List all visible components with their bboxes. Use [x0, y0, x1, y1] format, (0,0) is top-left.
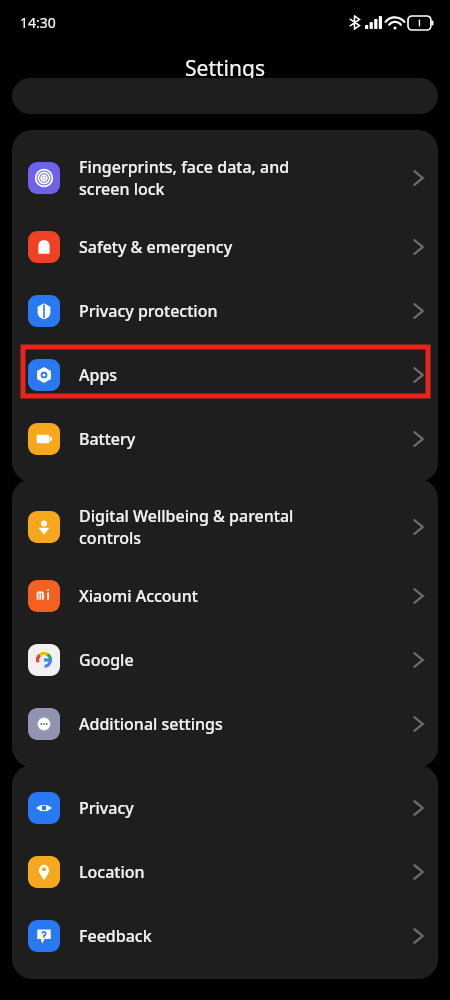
button[interactable]: Safety & emergency — [12, 215, 438, 279]
staticText: Google — [79, 649, 413, 671]
staticText: Digital Wellbeing & parental controls — [79, 505, 413, 549]
button[interactable]: Additional settings — [12, 692, 438, 756]
button[interactable]: Feedback — [12, 904, 438, 968]
staticText: Settings — [185, 54, 265, 83]
staticText: Safety & emergency — [79, 236, 413, 258]
button[interactable]: Privacy protection — [12, 279, 438, 343]
staticText: Feedback — [79, 925, 413, 947]
button[interactable]: Google — [12, 628, 438, 692]
button[interactable]: Location — [12, 840, 438, 904]
button[interactable]: Xiaomi Account — [12, 564, 438, 628]
staticText: Battery — [79, 428, 413, 450]
button[interactable]: Battery — [12, 407, 438, 471]
button[interactable]: Privacy — [12, 776, 438, 840]
button[interactable]: Fingerprints, face data, and screen lock — [12, 141, 438, 215]
staticText: Apps — [79, 364, 413, 386]
staticText: Additional settings — [79, 713, 413, 735]
staticText: Privacy — [79, 797, 413, 819]
staticText: 14:30 — [20, 13, 56, 32]
staticText: Location — [79, 861, 413, 883]
staticText: Privacy protection — [79, 300, 413, 322]
staticText: Fingerprints, face data, and screen lock — [79, 156, 413, 200]
button[interactable]: Apps — [12, 343, 438, 407]
staticText: Xiaomi Account — [79, 585, 413, 607]
button[interactable]: Digital Wellbeing & parental controls — [12, 490, 438, 564]
